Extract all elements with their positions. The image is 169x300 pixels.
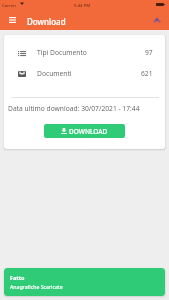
staticText: Carrier: [2, 2, 17, 8]
staticText: Anagrafiche Scaricate: [10, 283, 63, 290]
staticText: Download: [27, 16, 66, 27]
staticText: Data ultimo download: 30/07/2021 - 17:44: [8, 104, 140, 113]
staticText: Tipi Documento: [37, 48, 87, 57]
staticText: Fatto: [10, 274, 25, 281]
button[interactable]: [4, 67, 165, 87]
staticText: 5:44 PM: [74, 2, 91, 8]
staticText: 621: [141, 69, 153, 78]
button[interactable]: Account: [148, 11, 166, 29]
staticText: DOWNLOAD: [69, 127, 108, 136]
staticText: 97: [145, 48, 153, 57]
button[interactable]: DOWNLOAD: [44, 124, 125, 138]
staticText: Documenti: [37, 69, 72, 78]
button[interactable]: Open navigation menu: [3, 11, 21, 29]
button[interactable]: [4, 48, 165, 68]
button[interactable]: Fatto: [4, 268, 165, 296]
